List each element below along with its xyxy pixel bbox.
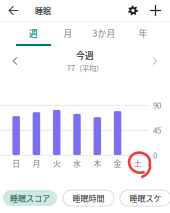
staticText: 3か月 — [92, 27, 115, 39]
staticText: 月 — [32, 157, 40, 169]
staticText: 90 — [153, 99, 161, 111]
button[interactable]: 設定 — [122, 0, 144, 21]
staticText: 0 — [153, 149, 157, 161]
button[interactable]: 次の週 — [143, 46, 167, 76]
staticText: 年 — [138, 27, 147, 39]
staticText: 45 — [153, 124, 161, 136]
button[interactable]: 戻る — [3, 0, 24, 21]
staticText: 金 — [114, 157, 122, 169]
button[interactable]: 睡眠スコア — [3, 190, 57, 206]
button[interactable]: 3か月 — [85, 22, 123, 46]
staticText: 土 — [134, 157, 142, 169]
staticText: 水 — [73, 157, 81, 169]
button[interactable]: 週 — [16, 22, 51, 46]
staticText: 睡眠スコア — [10, 192, 50, 204]
button[interactable]: 睡眠スケ — [120, 190, 170, 206]
staticText: 月 — [63, 27, 72, 39]
staticText: 睡眠 — [35, 5, 51, 16]
staticText: 睡眠スケ — [129, 192, 161, 204]
staticText: 火 — [53, 157, 61, 169]
button[interactable]: 前の週 — [3, 46, 27, 76]
button[interactable]: 月 — [51, 22, 85, 46]
staticText: 77（平均） — [67, 62, 103, 73]
staticText: 木 — [93, 157, 101, 169]
button[interactable]: 年 — [123, 22, 163, 46]
staticText: 週 — [29, 27, 38, 39]
staticText: 睡眠時間 — [72, 192, 104, 204]
button[interactable]: 睡眠時間 — [63, 190, 114, 206]
staticText: 日 — [12, 157, 20, 169]
button[interactable]: 追加 — [144, 0, 167, 21]
staticText: 今週 — [76, 49, 94, 61]
